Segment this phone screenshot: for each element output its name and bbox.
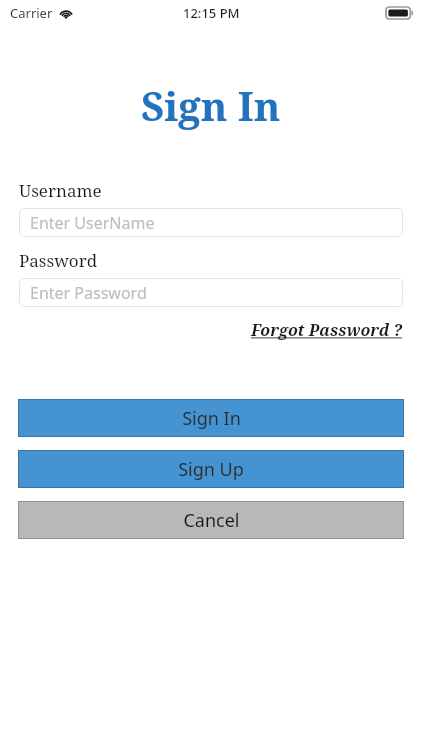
- staticText: Enter Password: [30, 282, 147, 304]
- staticText: Forgot Password ?: [251, 319, 403, 341]
- staticText: Sign Up: [178, 457, 244, 482]
- staticText: Enter UserName: [30, 212, 155, 234]
- staticText: Cancel: [183, 508, 240, 533]
- other: Wi-Fi signal: [59, 8, 73, 19]
- button[interactable]: Enter Password: [19, 278, 403, 307]
- button[interactable]: Forgot Password ?: [251, 319, 403, 341]
- button[interactable]: Enter UserName: [19, 208, 403, 237]
- button[interactable]: Sign Up: [18, 450, 404, 488]
- button[interactable]: Cancel: [18, 501, 404, 539]
- staticText: Sign In: [182, 406, 241, 431]
- staticText: Password: [19, 249, 98, 272]
- staticText: Username: [19, 179, 102, 202]
- staticText: Sign In: [141, 78, 281, 132]
- other: Battery full: [386, 7, 413, 19]
- staticText: Carrier: [10, 4, 53, 22]
- staticText: 12:15 PM: [183, 4, 240, 22]
- button[interactable]: Sign In: [18, 399, 404, 437]
